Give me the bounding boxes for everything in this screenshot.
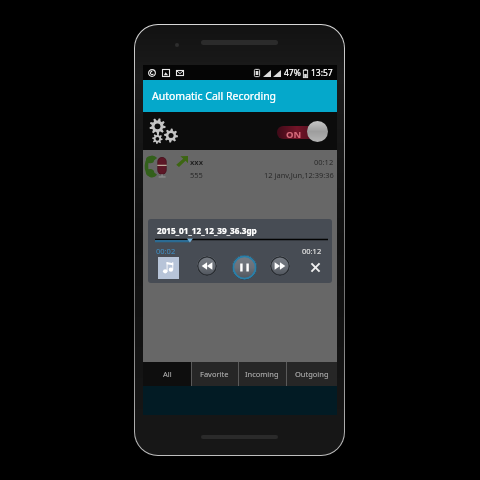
staticText: 00:12	[302, 246, 322, 256]
staticText: Automatic Call Recording	[152, 89, 277, 103]
staticText: Outgoing	[295, 369, 329, 379]
staticText: 00:12	[314, 157, 334, 167]
staticText: xxx	[190, 157, 204, 167]
button[interactable]: Fast forward	[270, 256, 290, 276]
staticText: ON	[286, 128, 302, 141]
staticText: 00:02	[156, 246, 176, 256]
button[interactable]: Rewind	[197, 256, 217, 276]
staticText: 47%	[284, 67, 301, 79]
button[interactable]: Audio file	[158, 257, 179, 279]
staticText: 13:57	[311, 67, 333, 79]
button[interactable]: Close	[310, 262, 321, 273]
button[interactable]: xxx	[143, 150, 337, 186]
staticText: 12 janv,Jun,12:39:36	[264, 170, 334, 180]
button[interactable]: Toggle call recording	[307, 121, 328, 142]
button[interactable]: Outgoing	[286, 362, 337, 386]
staticText: Incoming	[245, 369, 279, 379]
staticText: Favorite	[200, 369, 229, 379]
staticText: 555	[190, 170, 203, 180]
button[interactable]: Favorite	[191, 362, 238, 386]
button[interactable]: Incoming	[238, 362, 286, 386]
other: Settings	[146, 114, 180, 148]
button[interactable]: Pause	[232, 255, 257, 280]
button[interactable]: All	[143, 362, 191, 386]
staticText: All	[163, 369, 172, 379]
staticText: 2015_01_12_12_39_36.3gp	[157, 225, 257, 236]
button[interactable]: Settings	[143, 112, 337, 150]
